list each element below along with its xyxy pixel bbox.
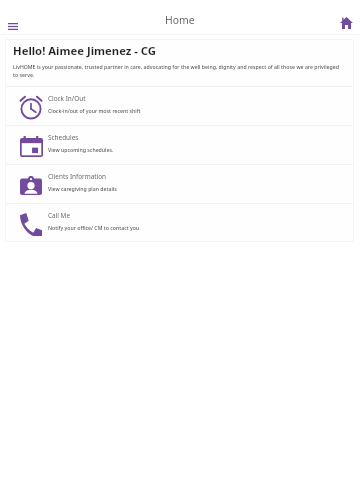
staticText: Clock In/Out (48, 94, 86, 103)
button[interactable]: Clock In/Out (5, 87, 354, 125)
staticText: Home (165, 13, 195, 27)
staticText: Clock-in/out of your most recent shift (48, 107, 141, 114)
staticText: Call Me (48, 211, 70, 220)
staticText: View caregiving plan details (48, 185, 117, 192)
staticText: Clients Information (48, 172, 107, 181)
staticText: View upcoming schedules. (48, 146, 114, 153)
button[interactable]: Call Me (5, 204, 354, 242)
button[interactable]: Clients Information (5, 165, 354, 203)
staticText: Hello! Aimee Jimenez - CG (13, 43, 157, 58)
staticText: Notify your office/ CM to contact you (48, 224, 140, 231)
staticText: LivHOME is your passionate, trusted part… (13, 63, 345, 79)
button[interactable]: Menu (0, 13, 26, 39)
button[interactable]: Schedules (5, 126, 354, 164)
button[interactable]: Home (333, 10, 359, 36)
staticText: Schedules (48, 133, 79, 142)
